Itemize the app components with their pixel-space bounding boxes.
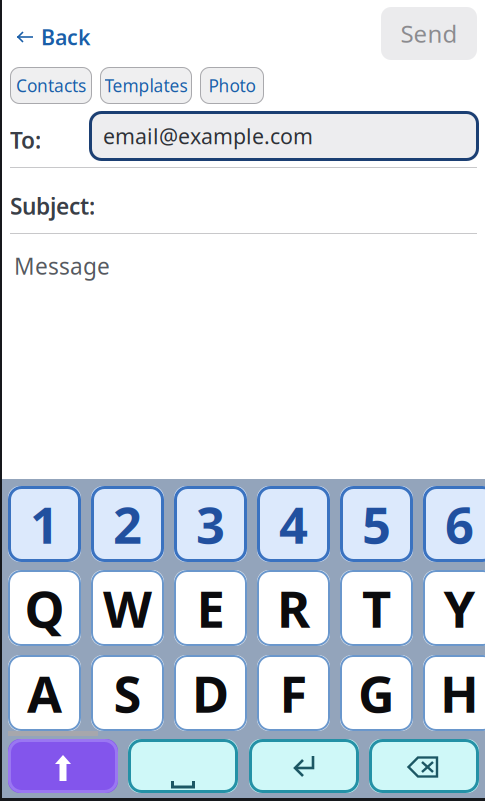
button[interactable]: D [174, 655, 247, 731]
button[interactable]: E [174, 570, 247, 646]
button[interactable]: 2 [91, 486, 164, 562]
button[interactable]: Templates [100, 67, 192, 104]
staticText: S [113, 659, 141, 727]
staticText: 1 [30, 490, 59, 558]
staticText: 5 [362, 490, 391, 558]
button[interactable]: Q [8, 570, 81, 646]
staticText: T [362, 574, 391, 642]
button[interactable]: F [257, 655, 330, 731]
button[interactable]: R [257, 570, 330, 646]
button[interactable]: 5 [340, 486, 413, 562]
staticText: D [192, 659, 229, 727]
button[interactable]: Photo [200, 67, 264, 104]
staticText: F [279, 659, 307, 727]
button[interactable]: Return [249, 739, 359, 793]
button[interactable]: Delete [369, 739, 479, 793]
staticText: 3 [196, 490, 225, 558]
button[interactable]: Space [128, 739, 238, 793]
button[interactable]: S [91, 655, 164, 731]
button[interactable]: Contacts [10, 67, 92, 104]
staticText: A [27, 659, 62, 727]
staticText: Back [41, 23, 91, 51]
button[interactable]: 1 [8, 486, 81, 562]
button[interactable]: A [8, 655, 81, 731]
staticText: Q [24, 574, 64, 642]
button[interactable]: 3 [174, 486, 247, 562]
staticText: Photo [208, 74, 255, 97]
button[interactable]: 6 [423, 486, 485, 562]
button[interactable]: G [340, 655, 413, 731]
staticText: 2 [113, 490, 142, 558]
staticText: Subject: [10, 191, 95, 221]
staticText: Message [14, 251, 110, 281]
button[interactable]: W [91, 570, 164, 646]
staticText: H [440, 659, 479, 727]
staticText: To: [10, 125, 41, 155]
button[interactable]: H [423, 655, 485, 731]
staticText: Y [443, 574, 475, 642]
button[interactable]: Send [381, 7, 477, 60]
staticText: E [196, 574, 224, 642]
staticText: Send [400, 18, 457, 49]
staticText: W [103, 574, 152, 642]
button[interactable]: 4 [257, 486, 330, 562]
staticText: Templates [104, 74, 187, 97]
staticText: Contacts [16, 74, 86, 97]
button[interactable]: Shift [8, 739, 118, 793]
staticText: email@example.com [103, 122, 313, 150]
staticText: G [358, 659, 395, 727]
staticText: 6 [445, 490, 474, 558]
staticText: 4 [279, 490, 308, 558]
button[interactable]: Y [423, 570, 485, 646]
staticText: R [277, 574, 310, 642]
button[interactable]: Back [12, 18, 96, 56]
button[interactable]: T [340, 570, 413, 646]
